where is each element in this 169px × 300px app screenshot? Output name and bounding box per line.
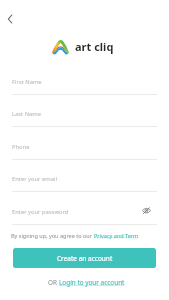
- button[interactable]: Privacy and Term: [94, 232, 139, 239]
- staticText: art cliq: [75, 39, 114, 54]
- staticText: Enter your password: [12, 208, 69, 216]
- staticText: Enter your email: [12, 175, 57, 183]
- staticText: By signing up, you agree to our: [11, 232, 94, 239]
- button[interactable]: Phone: [0, 139, 169, 160]
- button[interactable]: Show password: [140, 204, 152, 216]
- staticText: First Name: [12, 78, 42, 86]
- button[interactable]: Back: [1, 10, 18, 27]
- staticText: Last Name: [12, 110, 42, 118]
- button[interactable]: Create an account: [13, 248, 156, 268]
- button[interactable]: Last Name: [0, 106, 169, 127]
- staticText: OR: [48, 278, 59, 287]
- button[interactable]: Enter your password: [0, 204, 169, 225]
- staticText: Create an account: [57, 254, 113, 263]
- staticText: Phone: [12, 143, 30, 151]
- button[interactable]: First Name: [0, 74, 169, 95]
- button[interactable]: Login to your account: [59, 278, 125, 287]
- button[interactable]: Enter your email: [0, 171, 169, 192]
